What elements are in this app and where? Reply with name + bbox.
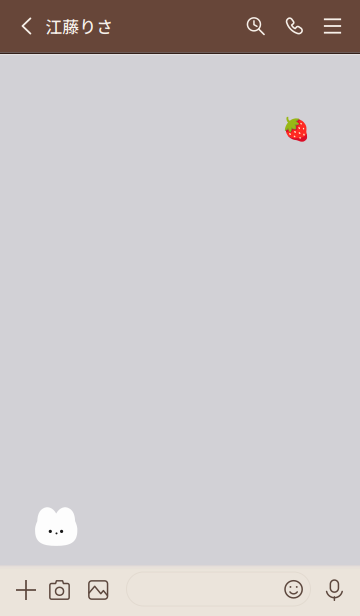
button[interactable]: Menu <box>312 4 352 48</box>
button[interactable]: Call <box>274 4 314 48</box>
staticText: 🍓 <box>282 117 310 142</box>
button[interactable]: Emoji <box>279 574 309 604</box>
button[interactable]: 江藤りさ <box>45 4 195 48</box>
button[interactable]: Add <box>9 568 43 612</box>
button[interactable]: Back <box>9 4 43 48</box>
staticText: 江藤りさ <box>45 14 113 38</box>
button[interactable]: Message <box>126 572 310 606</box>
button[interactable]: Photos <box>81 568 115 612</box>
button[interactable]: Camera <box>42 567 76 611</box>
button[interactable]: Search <box>236 4 276 48</box>
button[interactable]: Voice message <box>317 568 351 612</box>
